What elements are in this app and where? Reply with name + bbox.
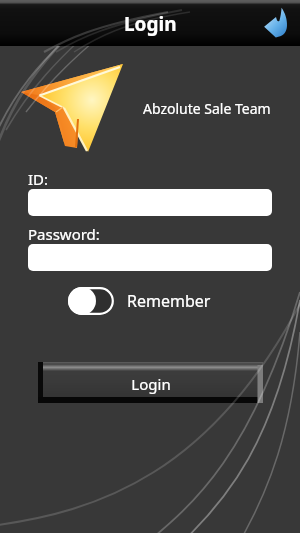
staticText: Abzolute Sale Team [143, 99, 271, 118]
staticText: Remember [127, 290, 211, 312]
button[interactable]: Back [258, 5, 294, 41]
staticText: ID: [28, 169, 49, 189]
button[interactable]: Remember toggle [68, 287, 114, 315]
button[interactable]: Password input [28, 244, 272, 271]
staticText: Password: [28, 224, 100, 244]
button[interactable]: Login [38, 362, 263, 403]
staticText: Login [131, 374, 171, 394]
button[interactable]: ID input [28, 189, 272, 216]
staticText: Login [124, 11, 177, 37]
